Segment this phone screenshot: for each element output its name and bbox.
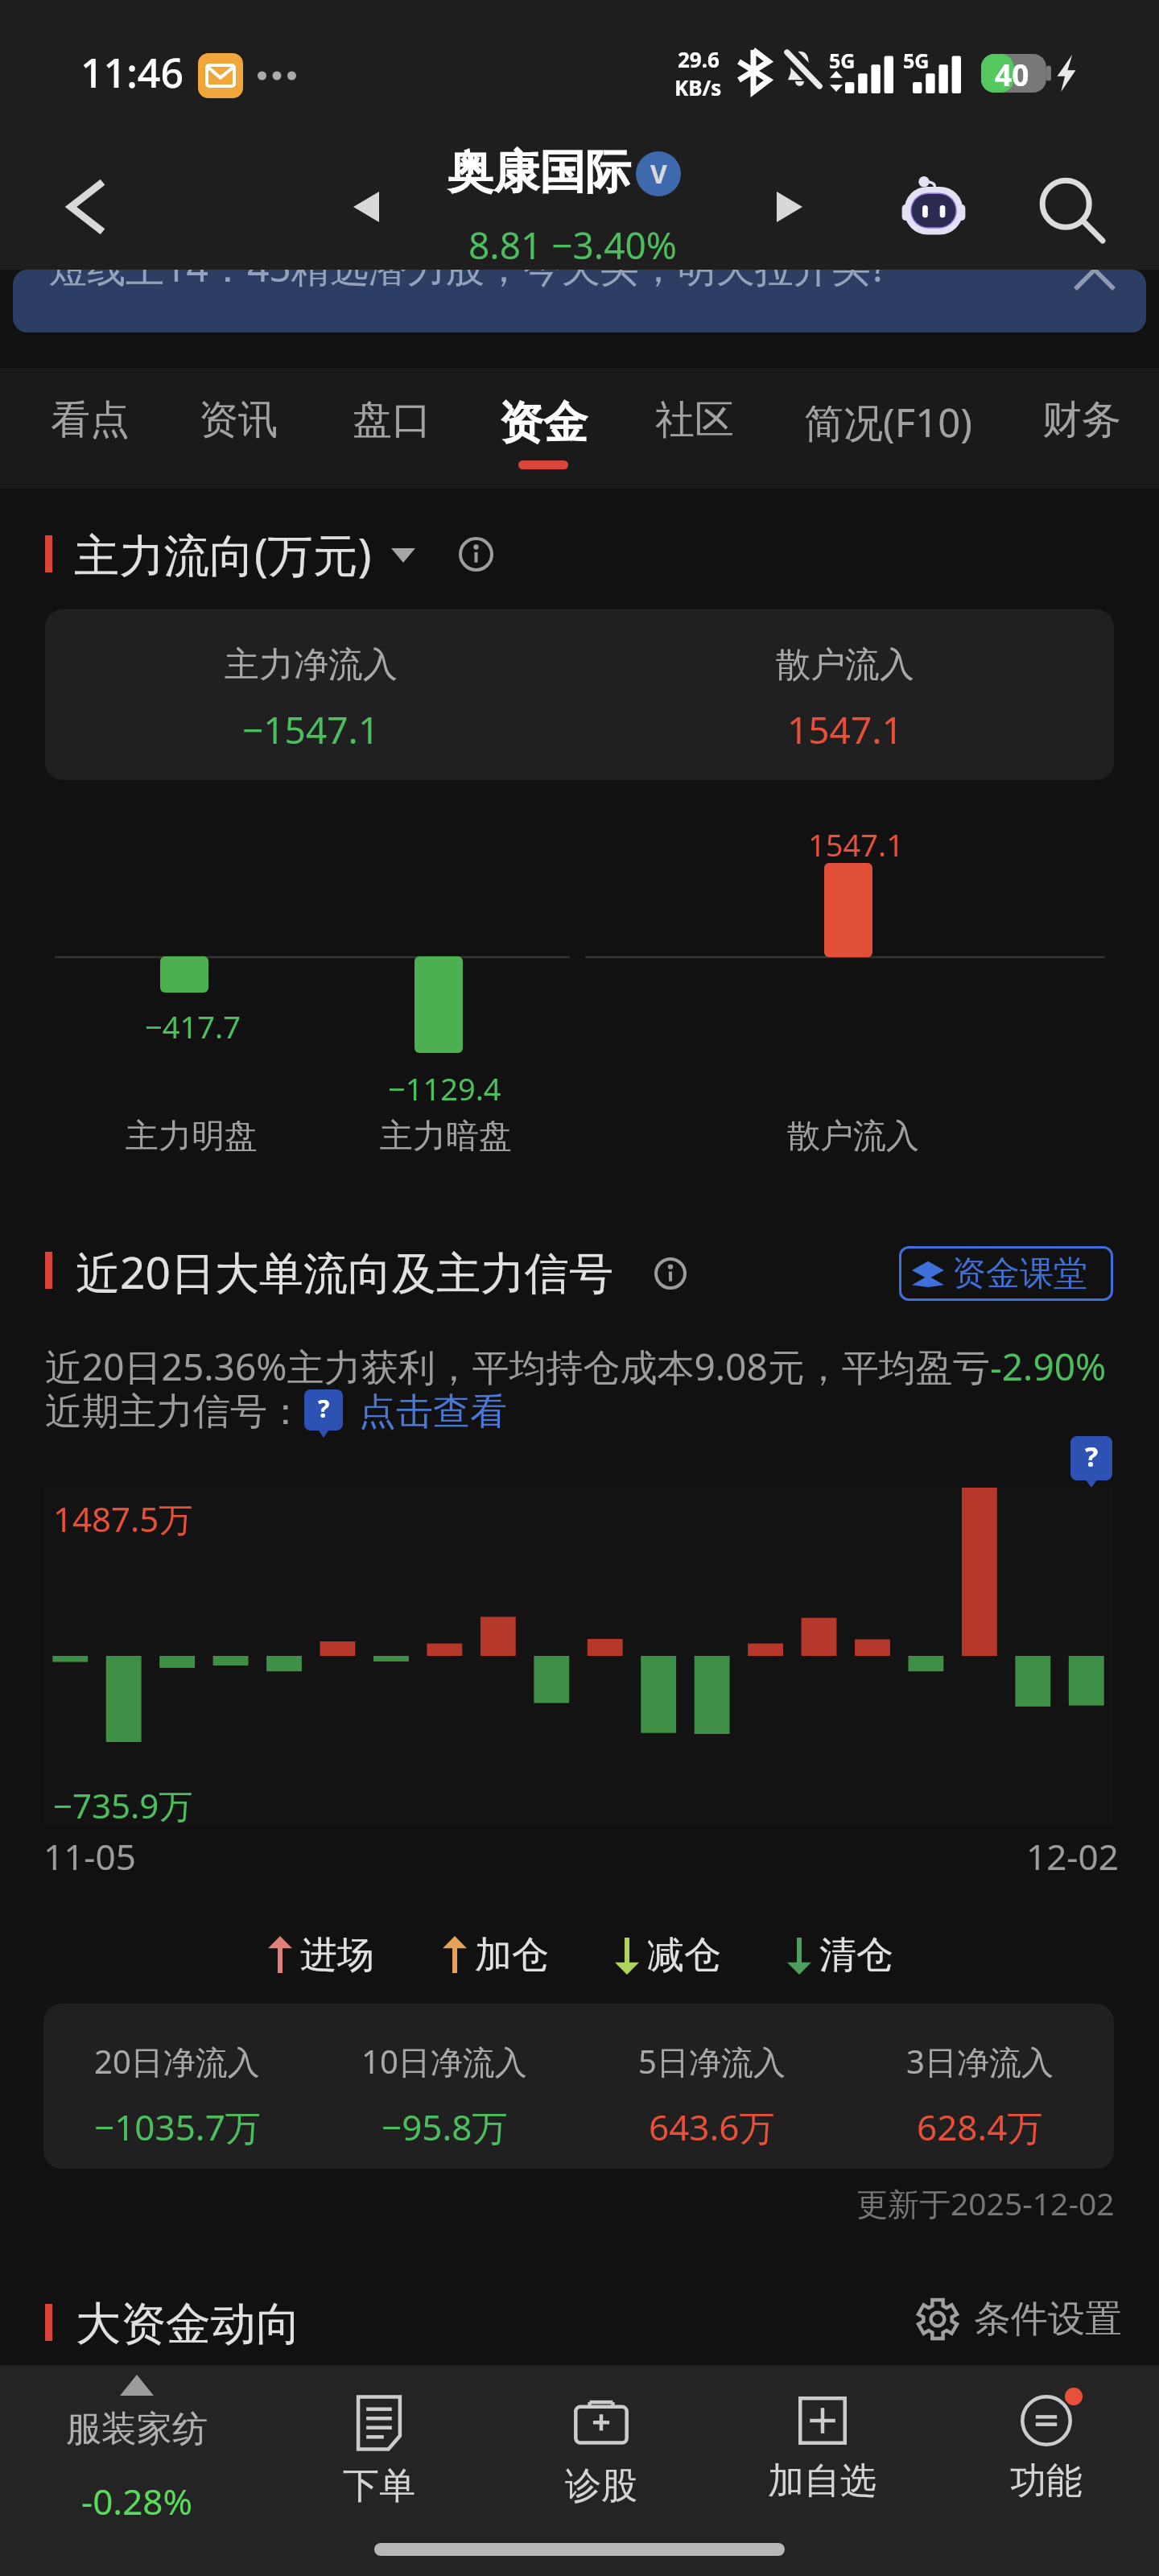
button[interactable]: 主力净流入	[45, 609, 1114, 780]
staticText: 进场	[300, 1932, 374, 1979]
staticText: 清仓	[819, 1932, 893, 1979]
button[interactable]: Search	[1033, 171, 1113, 251]
button[interactable]: 短线王14：45精选潜力股，今天买，明天拉开买?	[13, 270, 1146, 332]
button[interactable]: 点击查看	[359, 1389, 507, 1435]
button[interactable]: 5日净流入	[578, 2004, 846, 2169]
staticText: 628.4万	[917, 2103, 1043, 2151]
staticText: 643.6万	[649, 2103, 775, 2151]
button[interactable]: 看点	[39, 395, 142, 489]
staticText: 资金课堂	[952, 1253, 1087, 1295]
button[interactable]: 加仓	[443, 1932, 549, 1979]
staticText: 散户流入	[787, 1116, 919, 1158]
staticText: 加仓	[475, 1932, 549, 1979]
staticText: 盘口	[353, 395, 431, 445]
staticText: 3日净流入	[906, 2039, 1054, 2083]
button[interactable]: 清仓	[787, 1932, 893, 1979]
button[interactable]: 简况(F10)	[782, 395, 995, 489]
button[interactable]: 社区	[643, 395, 746, 489]
staticText: 资金	[499, 395, 588, 451]
staticText: 下单	[343, 2463, 415, 2509]
staticText: 减仓	[647, 1932, 721, 1979]
button[interactable]: Help	[1070, 1436, 1112, 1488]
staticText: 加自选	[768, 2458, 876, 2504]
staticText: 主力明盘	[126, 1116, 258, 1158]
staticText: 11:46	[80, 45, 184, 100]
staticText: 40	[995, 54, 1029, 93]
button[interactable]: 条件设置	[916, 2296, 1122, 2343]
button[interactable]: Info about main flow	[448, 526, 504, 582]
staticText: 近期主力信号：	[45, 1389, 304, 1435]
button[interactable]: Previous stock	[332, 172, 401, 242]
staticText: 看点	[51, 395, 130, 445]
staticText: 主力流向(万元)	[74, 523, 372, 584]
button[interactable]: Info about signals	[642, 1245, 699, 1302]
staticText: 功能	[1010, 2458, 1083, 2504]
staticText: 5G	[829, 47, 856, 74]
staticText: ?	[1085, 1438, 1099, 1475]
staticText: V	[650, 156, 667, 192]
staticText: -2.90%	[990, 1341, 1107, 1392]
button[interactable]: Back	[48, 170, 122, 244]
button[interactable]: Next stock	[755, 172, 824, 242]
button[interactable]: 诊股	[513, 2381, 690, 2534]
staticText: −735.9万	[53, 1782, 193, 1828]
staticText: 服装家纺	[66, 2407, 208, 2451]
staticText: 财务	[1042, 395, 1121, 445]
staticText: 1487.5万	[53, 1496, 193, 1542]
button[interactable]: 主力流向(万元)	[74, 523, 415, 584]
button[interactable]: 服装家纺	[24, 2375, 250, 2536]
button[interactable]: Help	[304, 1389, 343, 1438]
button[interactable]: 资金课堂	[899, 1246, 1113, 1301]
button[interactable]: 资讯	[187, 395, 290, 489]
staticText: 近20日25.36%主力获利，平均持仓成本9.08元，平均盈亏	[45, 1341, 990, 1392]
staticText: −1547.1	[242, 704, 380, 755]
staticText: 社区	[655, 395, 734, 445]
staticText: KB/s	[674, 73, 722, 101]
staticText: 5日净流入	[638, 2039, 786, 2083]
staticText: 简况(F10)	[804, 395, 972, 449]
button[interactable]: AI assistant	[893, 163, 974, 244]
button[interactable]: 减仓	[615, 1932, 721, 1979]
button[interactable]: 10日净流入	[311, 2004, 578, 2169]
button[interactable]: 下单	[291, 2381, 468, 2534]
button[interactable]: 20日净流入	[43, 2004, 311, 2169]
staticText: 12-02	[1026, 1832, 1119, 1880]
staticText: 5G	[903, 47, 930, 74]
staticText: 大资金动向	[76, 2296, 301, 2353]
staticText: 主力净流入	[225, 643, 398, 687]
staticText: 奥康国际	[448, 143, 631, 201]
staticText: 更新于2025-12-02	[856, 2182, 1115, 2224]
staticText: 20日净流入	[94, 2039, 260, 2083]
button[interactable]: 3日净流入	[846, 2004, 1114, 2169]
staticText: 条件设置	[974, 2296, 1122, 2343]
staticText: 散户流入	[776, 643, 914, 687]
button[interactable]: 进场	[268, 1932, 374, 1979]
staticText: −417.7	[145, 1005, 241, 1047]
button[interactable]: 奥康国际	[448, 143, 681, 201]
staticText: 29.6	[678, 45, 720, 73]
staticText: 1547.1	[787, 704, 903, 755]
staticText: −1129.4	[388, 1067, 501, 1109]
button[interactable]: 加自选	[733, 2381, 910, 2534]
staticText: −95.8万	[382, 2103, 508, 2151]
staticText: 主力暗盘	[380, 1116, 512, 1158]
staticText: −1035.7万	[94, 2103, 261, 2151]
staticText: 近20日大单流向及主力信号	[76, 1241, 613, 1302]
button[interactable]: 财务	[1030, 395, 1133, 489]
staticText: 8.81 −3.40%	[468, 220, 678, 270]
staticText: 诊股	[565, 2463, 637, 2509]
staticText: -0.28%	[81, 2477, 193, 2525]
staticText: ?	[318, 1392, 330, 1425]
button[interactable]: 功能	[958, 2381, 1135, 2534]
staticText: 短线王14：45精选潜力股，今天买，明天拉开买?	[48, 270, 888, 294]
staticText: 10日净流入	[361, 2039, 527, 2083]
button[interactable]: 盘口	[340, 395, 443, 489]
staticText: 资讯	[199, 395, 278, 445]
staticText: 1547.1	[808, 824, 904, 865]
button[interactable]: 资金	[487, 395, 600, 489]
staticText: 11-05	[43, 1832, 136, 1880]
